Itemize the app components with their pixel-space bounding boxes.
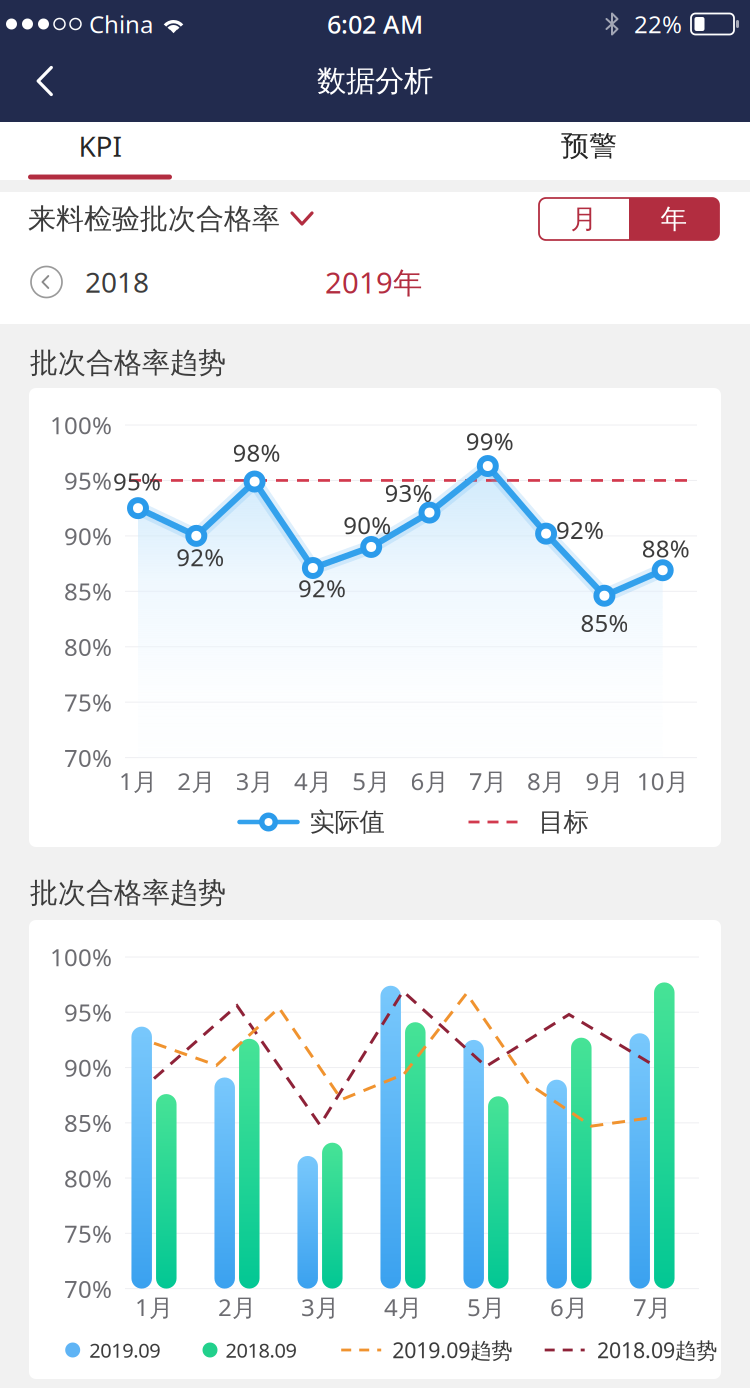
staticText: 80% (64, 631, 112, 663)
staticText: 1月 (119, 765, 157, 797)
button[interactable]: 年 (629, 198, 719, 240)
staticText: 6月 (550, 1291, 588, 1323)
staticText: 80% (64, 1162, 112, 1194)
staticText: 100% (50, 409, 112, 441)
staticText: 8月 (527, 765, 565, 797)
staticText: 1月 (135, 1291, 173, 1323)
staticText: 2018 (85, 263, 149, 301)
staticText: 5月 (467, 1291, 505, 1323)
button[interactable]: 月 (539, 198, 629, 240)
staticText: 2018.09 (226, 1337, 297, 1363)
staticText: 6月 (410, 765, 448, 797)
staticText: 92% (556, 514, 604, 546)
staticText: 数据分析 (317, 63, 433, 99)
staticText: 目标 (538, 806, 588, 837)
staticText: 10月 (637, 765, 689, 797)
staticText: 7月 (469, 765, 507, 797)
staticText: 75% (64, 686, 112, 718)
staticText: 90% (64, 1052, 112, 1083)
staticText: 2月 (218, 1291, 256, 1323)
staticText: 75% (64, 1217, 112, 1249)
staticText: 70% (64, 1273, 112, 1305)
staticText: 4月 (294, 765, 332, 797)
staticText: 95% (113, 465, 161, 497)
staticText: 9月 (585, 765, 623, 797)
staticText: China (89, 8, 153, 40)
staticText: 99% (466, 425, 514, 457)
staticText: 实际值 (309, 806, 384, 837)
staticText: 85% (580, 607, 628, 639)
staticText: 2019年 (325, 262, 422, 301)
staticText: 2019.09 (89, 1337, 160, 1363)
staticText: 3月 (236, 765, 274, 797)
staticText: 95% (64, 464, 112, 496)
staticText: 2月 (177, 765, 215, 797)
staticText: 3月 (301, 1291, 339, 1323)
staticText: 88% (642, 532, 690, 564)
staticText: 22% (634, 8, 682, 40)
staticText: 90% (343, 509, 391, 541)
button[interactable]: 来料检验批次合格率 (28, 188, 323, 250)
staticText: 85% (64, 575, 112, 607)
button[interactable]: Back (13, 46, 77, 116)
staticText: 85% (64, 1107, 112, 1139)
staticText: 70% (64, 742, 112, 774)
staticText: 批次合格率趋势 (30, 346, 226, 380)
staticText: 来料检验批次合格率 (28, 202, 280, 236)
staticText: 2018.09趋势 (597, 1336, 717, 1364)
staticText: 98% (233, 437, 281, 468)
staticText: 预警 (561, 129, 617, 163)
staticText: 年 (660, 203, 687, 235)
button[interactable]: 预警 (375, 122, 750, 180)
staticText: KPI (78, 127, 121, 165)
staticText: 93% (384, 477, 432, 508)
staticText: 6:02 AM (327, 7, 423, 41)
button[interactable]: KPI (0, 122, 375, 180)
staticText: 7月 (633, 1291, 671, 1323)
staticText: 92% (176, 541, 224, 573)
button[interactable]: 2018 (31, 251, 159, 313)
staticText: 100% (50, 941, 112, 973)
staticText: 4月 (384, 1291, 422, 1323)
staticText: 2019.09趋势 (392, 1336, 512, 1364)
staticText: 5月 (352, 765, 390, 797)
staticText: 月 (570, 203, 597, 235)
staticText: 92% (298, 572, 346, 604)
staticText: 批次合格率趋势 (30, 876, 226, 910)
staticText: 95% (64, 996, 112, 1028)
staticText: 90% (64, 520, 112, 552)
